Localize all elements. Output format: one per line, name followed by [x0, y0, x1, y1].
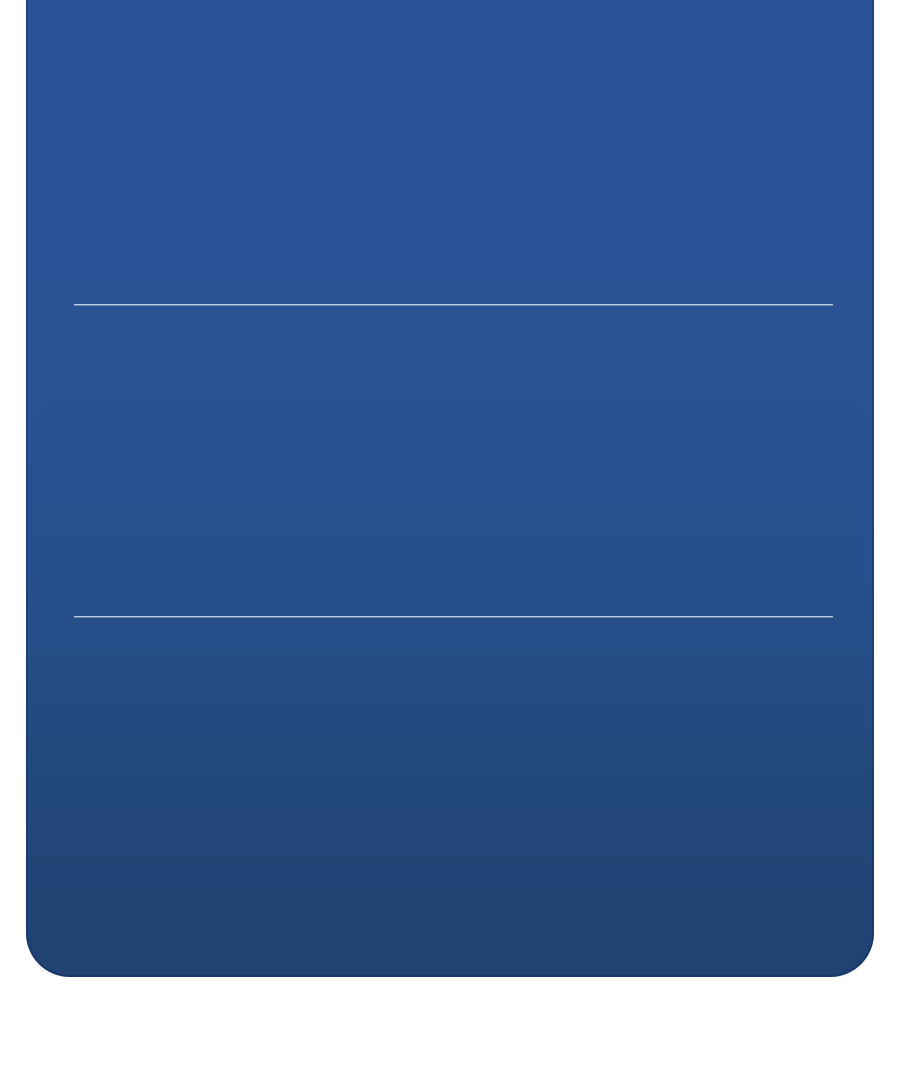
button[interactable]: Settings [26, 617, 874, 977]
button[interactable]: Activity [26, 305, 874, 616]
